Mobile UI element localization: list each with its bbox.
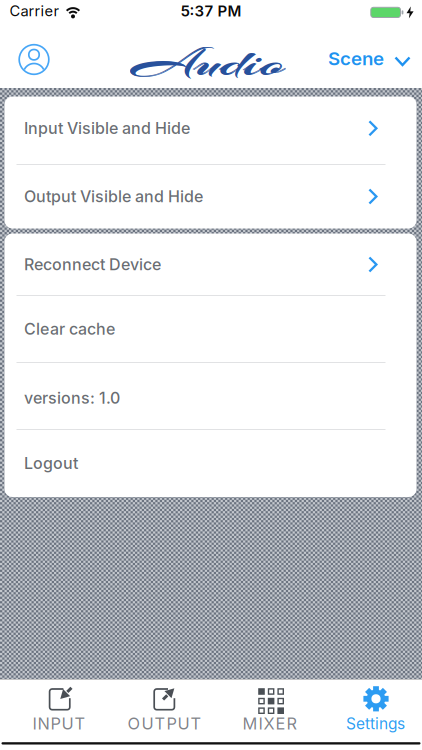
staticText: versions: 1.0 [24, 388, 120, 408]
button[interactable]: Reconnect Device [4, 233, 416, 295]
staticText: Reconnect Device [24, 255, 161, 274]
staticText: Audio [157, 38, 259, 88]
staticText: Settings [346, 714, 405, 733]
staticText: OUTPUT [127, 714, 201, 733]
staticText: Input Visible and Hide [24, 119, 190, 138]
staticText: MIXER [242, 714, 297, 733]
staticText: Carrier [9, 2, 59, 20]
staticText: Scene [328, 47, 384, 70]
button[interactable]: Scene [326, 45, 410, 79]
button[interactable]: Input Visible and Hide [4, 96, 416, 164]
staticText: Clear cache [24, 319, 115, 339]
button[interactable]: Account [12, 37, 56, 81]
button[interactable]: Output Visible and Hide [4, 164, 416, 228]
staticText: Logout [24, 454, 78, 473]
button[interactable]: OUTPUT [112, 679, 217, 750]
staticText: 5:37 PM [180, 2, 241, 20]
staticText: Audio [158, 39, 260, 89]
button[interactable]: INPUT [6, 679, 112, 750]
button[interactable]: Clear cache [4, 295, 416, 362]
staticText: Output Visible and Hide [24, 187, 203, 206]
button[interactable]: Logout [4, 429, 416, 497]
staticText: INPUT [32, 714, 85, 733]
button[interactable]: MIXER [217, 679, 323, 750]
button[interactable]: Settings [323, 679, 422, 750]
